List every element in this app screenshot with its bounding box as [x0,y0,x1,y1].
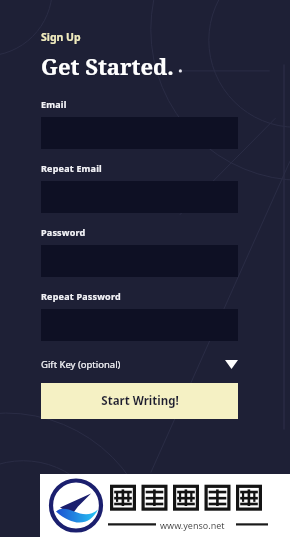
button[interactable]: Gift Key (optional) [41,355,238,373]
button[interactable]: Start Writing! [41,383,238,419]
staticText: Repeat Password [41,290,121,302]
staticText: Repeat Email [41,162,102,174]
staticText: Email [41,98,67,110]
other: Expand gift key options [225,360,238,369]
staticText: Start Writing! [101,393,179,409]
staticText: Gift Key (optional) [41,358,225,371]
staticText: www.yenso.net [160,519,225,531]
staticText: Sign Up [41,30,81,44]
staticText: Get Started. [41,51,174,81]
staticText: Password [41,226,86,238]
